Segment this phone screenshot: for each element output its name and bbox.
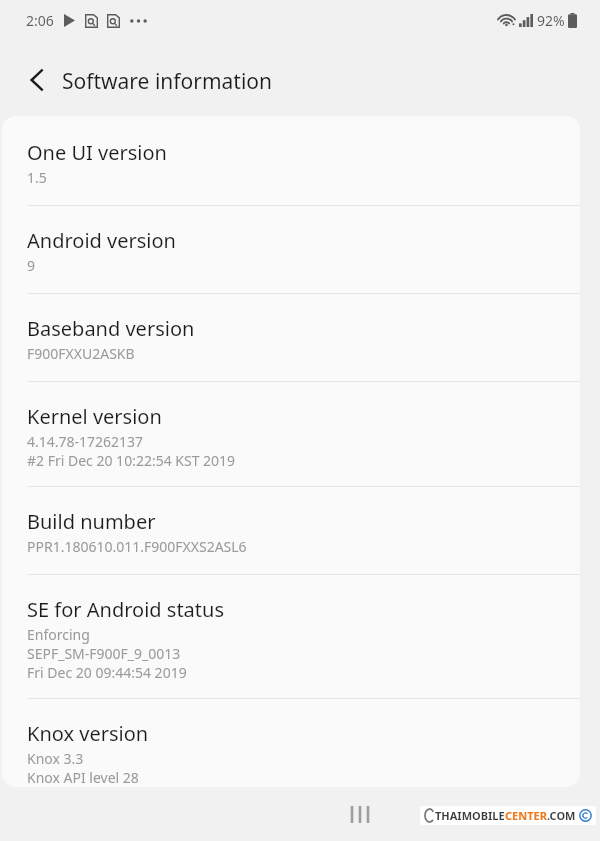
staticText: PPR1.180610.011.F900FXXS2ASL6 [27,537,247,556]
button[interactable]: Build number [2,487,580,574]
button[interactable]: Back [15,58,59,102]
staticText: .COM [547,808,576,823]
staticText: SE for Android status [27,596,224,623]
staticText: Knox version [27,720,149,747]
staticText: Build number [27,508,156,535]
staticText: 1.5 [27,168,47,187]
staticText: Knox API level 28 [27,768,139,787]
staticText: THAIMOBILE [435,808,505,823]
staticText: Knox 3.3 [27,749,84,768]
button[interactable]: Baseband version [2,294,580,381]
button[interactable]: Android version [2,206,580,293]
button[interactable]: Kernel version [2,382,580,486]
staticText: 92% [537,11,565,30]
staticText: Fri Dec 20 09:44:54 2019 [27,663,187,682]
staticText: Android version [27,227,176,254]
staticText: One UI version [27,139,167,166]
staticText: Enforcing [27,625,90,644]
staticText: Kernel version [27,403,162,430]
staticText: #2 Fri Dec 20 10:22:54 KST 2019 [27,451,236,470]
staticText: F900FXXU2ASKB [27,344,135,363]
staticText: SEPF_SM-F900F_9_0013 [27,644,181,663]
button[interactable]: Recents [338,792,382,836]
staticText: 9 [27,256,36,275]
staticText: CENTER [505,808,547,823]
staticText: Baseband version [27,315,195,342]
staticText: Software information [62,67,272,96]
button[interactable]: Knox version [2,699,580,787]
staticText: 4.14.78-17262137 [27,432,144,451]
staticText: 2:06 [26,11,54,30]
button[interactable]: SE for Android status [2,575,580,698]
button[interactable]: One UI version [2,116,580,205]
